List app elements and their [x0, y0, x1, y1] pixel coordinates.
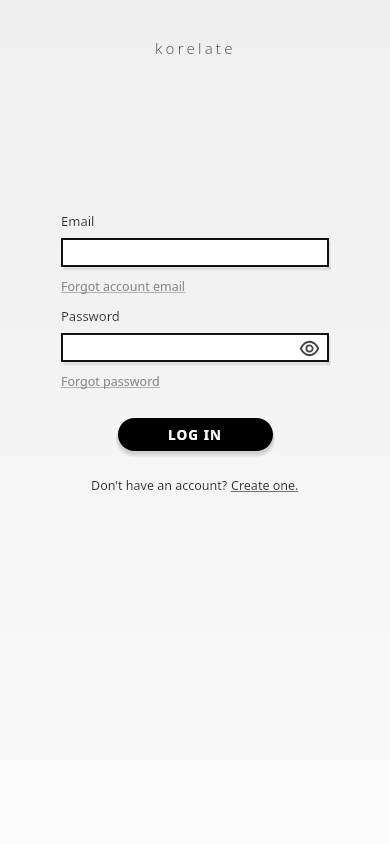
staticText: korelate: [155, 38, 236, 58]
staticText: Don't have an account?: [91, 477, 231, 494]
staticText: Email: [61, 212, 95, 230]
staticText: Password: [61, 307, 120, 325]
button[interactable]: LOG IN: [118, 418, 273, 451]
button[interactable]: Show password: [298, 337, 320, 359]
staticText: LOG IN: [168, 426, 223, 444]
button[interactable]: Create one.: [231, 477, 299, 494]
button[interactable]: Forgot password: [61, 373, 160, 390]
button[interactable]: Show password: [61, 333, 329, 362]
button[interactable]: [61, 238, 329, 267]
button[interactable]: Forgot account email: [61, 278, 186, 295]
